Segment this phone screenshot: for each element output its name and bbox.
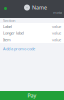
staticText: Item: [3, 37, 11, 42]
staticText: Section: [3, 18, 15, 23]
staticText: Pay: [27, 92, 36, 99]
staticText: Label: [3, 24, 12, 29]
button[interactable]: Item: [0, 36, 64, 43]
staticText: Add a promo code: [3, 46, 35, 51]
staticText: value: [52, 30, 61, 36]
staticText: value: [52, 37, 61, 42]
staticText: meta: [53, 10, 62, 15]
button[interactable]: Label: [0, 23, 64, 30]
staticText: Name: [32, 4, 47, 11]
button[interactable]: Longer label: [0, 30, 64, 36]
staticText: Longer label: [3, 30, 24, 36]
button[interactable]: Add a promo code: [3, 46, 35, 51]
button[interactable]: Pay: [0, 91, 64, 100]
staticText: value: [52, 24, 61, 29]
button[interactable]: Status: [0, 0, 7, 10]
